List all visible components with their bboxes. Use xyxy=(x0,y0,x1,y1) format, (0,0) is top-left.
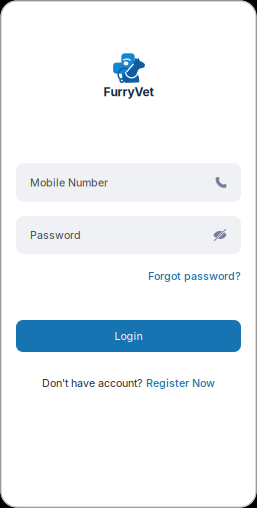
staticText: FurryVet xyxy=(103,85,153,99)
button[interactable]: Mobile Number xyxy=(16,163,241,202)
staticText: Login xyxy=(114,329,142,342)
button[interactable]: Login xyxy=(16,320,241,352)
staticText: Mobile Number xyxy=(30,176,108,189)
button[interactable]: Password xyxy=(16,216,241,254)
staticText: Forgot password? xyxy=(148,269,241,282)
staticText: Don't have account? xyxy=(42,376,142,389)
staticText: Register Now xyxy=(146,376,215,389)
button[interactable]: Forgot password? xyxy=(16,268,241,284)
button[interactable]: Register Now xyxy=(146,376,215,389)
staticText: Password xyxy=(30,228,81,241)
